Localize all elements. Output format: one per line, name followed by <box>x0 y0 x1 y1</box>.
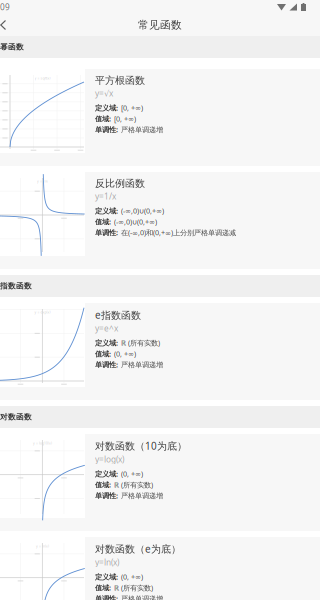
staticText: y = sqrt(x) <box>34 76 50 80</box>
staticText: 单调性: <box>95 594 118 600</box>
staticText: (0, +∞) <box>121 469 143 479</box>
button[interactable]: y = log10(x) <box>0 434 320 531</box>
staticText: (0, +∞) <box>114 349 136 359</box>
staticText: e指数函数 <box>95 308 141 322</box>
button[interactable]: y = exp(x) <box>0 303 320 400</box>
staticText: 对数函数 <box>0 412 32 422</box>
staticText: 严格单调递增 <box>121 360 163 369</box>
staticText: 平方根函数 <box>95 74 145 87</box>
button[interactable]: 返回 <box>0 14 8 35</box>
staticText: 单调性: <box>95 360 118 369</box>
staticText: ℝ (所有实数) <box>121 338 160 348</box>
staticText: y = exp(x) <box>34 310 50 314</box>
staticText: 单调性: <box>95 491 118 500</box>
staticText: y = log10(x) <box>33 441 52 445</box>
staticText: (-∞,0)∪(0,+∞) <box>121 206 164 216</box>
staticText: 09 <box>0 1 10 13</box>
staticText: 严格单调递增 <box>121 491 163 500</box>
staticText: 在(-∞,0)和(0,+∞)上分别严格单调递减 <box>121 228 236 237</box>
staticText: ℝ (所有实数) <box>114 480 153 490</box>
staticText: 定义域: <box>95 469 118 479</box>
staticText: 值域: <box>95 349 111 359</box>
staticText: 定义域: <box>95 206 118 216</box>
staticText: 指数函数 <box>0 281 32 291</box>
staticText: ℝ (所有实数) <box>114 583 153 593</box>
staticText: 定义域: <box>95 572 118 582</box>
button[interactable]: y = sqrt(x) <box>0 69 320 166</box>
staticText: (0, +∞) <box>121 572 143 582</box>
staticText: 单调性: <box>95 228 118 237</box>
staticText: 严格单调递增 <box>121 594 163 600</box>
staticText: 值域: <box>95 114 111 124</box>
staticText: 幂函数 <box>0 42 24 52</box>
staticText: 反比例函数 <box>95 177 145 190</box>
staticText: 值域: <box>95 480 111 490</box>
staticText: 值域: <box>95 583 111 593</box>
staticText: 单调性: <box>95 125 118 134</box>
button[interactable]: y = ln(x) <box>0 537 320 600</box>
staticText: 常见函数 <box>138 18 182 32</box>
staticText: [0, +∞) <box>114 114 136 124</box>
staticText: y = ln(x) <box>36 544 49 548</box>
staticText: y=ln(x) <box>95 557 119 568</box>
staticText: y=1/x <box>95 191 116 202</box>
staticText: (-∞,0)∪(0,+∞) <box>114 217 157 227</box>
staticText: 对数函数（10为底） <box>95 439 187 453</box>
staticText: y = 1/x <box>37 179 48 183</box>
staticText: [0, +∞) <box>121 103 143 113</box>
staticText: 值域: <box>95 217 111 227</box>
button[interactable]: y = 1/x <box>0 172 320 269</box>
staticText: y=e^x <box>95 323 118 334</box>
staticText: 定义域: <box>95 338 118 348</box>
staticText: 定义域: <box>95 103 118 113</box>
staticText: y=√x <box>95 88 113 99</box>
staticText: 对数函数（e为底） <box>95 542 181 556</box>
staticText: 严格单调递增 <box>121 125 163 134</box>
staticText: y=log(x) <box>95 454 124 465</box>
